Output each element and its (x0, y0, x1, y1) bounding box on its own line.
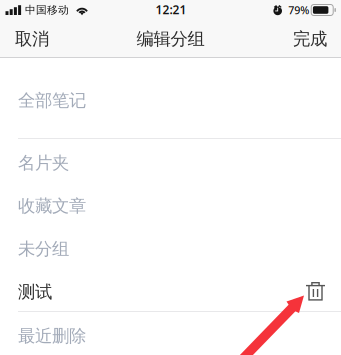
button[interactable]: 收藏文章 (0, 182, 341, 225)
button[interactable]: 未分组 (0, 225, 341, 268)
button[interactable]: 完成 (279, 20, 341, 58)
staticText: 收藏文章 (18, 195, 86, 217)
staticText: 名片夹 (18, 152, 69, 174)
staticText: 未分组 (18, 238, 69, 260)
button[interactable]: 最近删除 (0, 312, 341, 355)
staticText: 编辑分组 (136, 28, 204, 50)
button[interactable]: 取消 (0, 20, 64, 58)
staticText: 最近删除 (18, 325, 86, 347)
staticText: 取消 (15, 28, 49, 50)
staticText: 全部笔记 (18, 90, 86, 111)
staticText: 中国移动 (25, 3, 69, 16)
staticText: 完成 (293, 28, 327, 50)
button[interactable]: 全部笔记 (0, 58, 341, 138)
button[interactable]: 名片夹 (0, 139, 341, 182)
button[interactable]: 测试 (0, 268, 341, 311)
staticText: 测试 (18, 281, 52, 303)
staticText: 79% (288, 3, 309, 17)
staticText: 12:21 (155, 2, 186, 18)
